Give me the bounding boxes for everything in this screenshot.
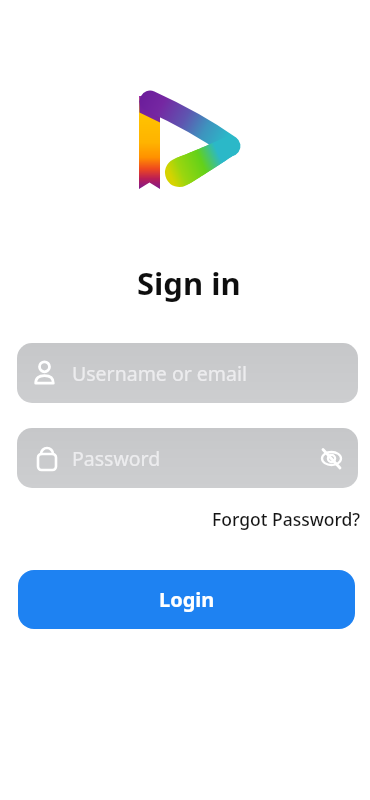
button[interactable]: Username or email (17, 343, 358, 403)
staticText: Username or email (72, 360, 248, 387)
staticText: Password (72, 445, 161, 472)
button[interactable]: Password (17, 428, 358, 488)
button[interactable]: Forgot Password? (212, 507, 361, 531)
staticText: Sign in (137, 262, 241, 304)
button[interactable]: Login (18, 570, 355, 629)
staticText: Login (159, 586, 215, 613)
